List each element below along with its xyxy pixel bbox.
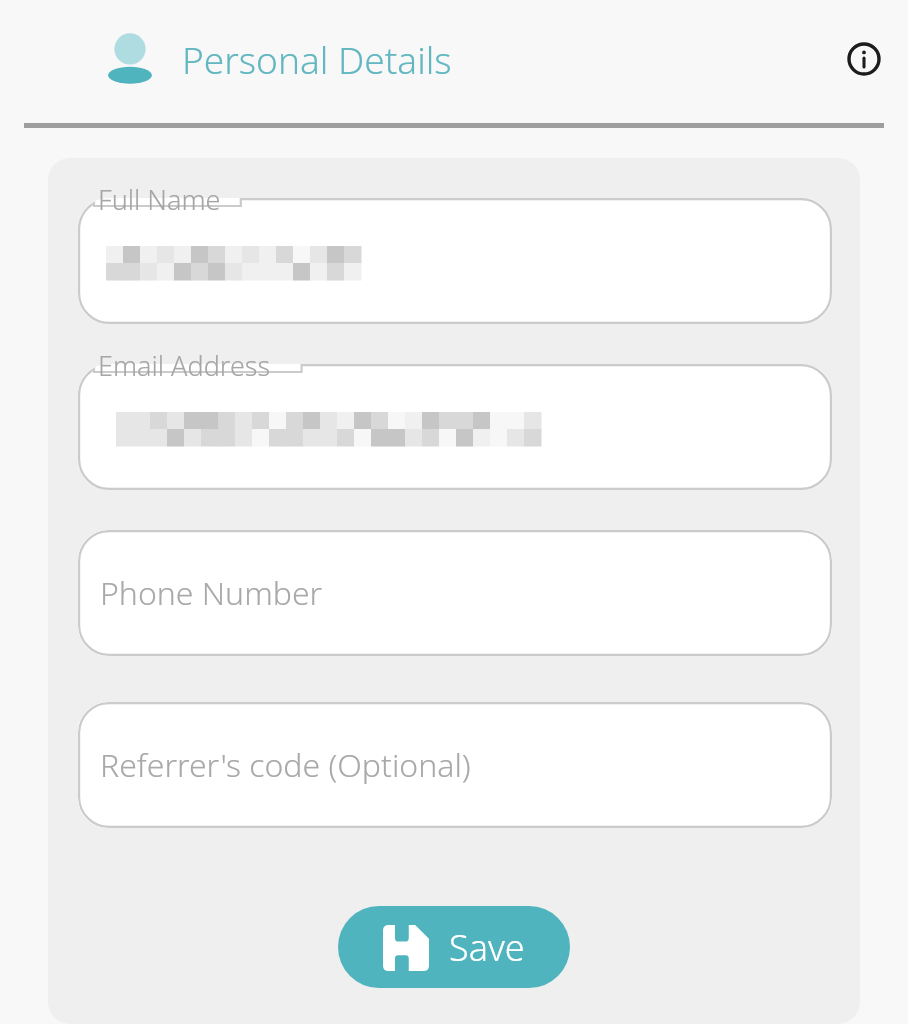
staticText: Save <box>449 923 525 972</box>
button[interactable]: Email Address <box>78 364 832 490</box>
staticText: Referrer's code (Optional) <box>100 743 471 787</box>
button[interactable]: Info <box>832 27 896 91</box>
other: Profile <box>104 31 156 87</box>
staticText: Personal Details <box>182 34 452 84</box>
button[interactable]: Phone Number <box>78 530 832 656</box>
staticText: Email Address <box>98 347 271 384</box>
button[interactable]: Full Name <box>78 198 832 324</box>
button[interactable]: Save <box>338 906 570 988</box>
staticText: Full Name <box>98 181 221 218</box>
button[interactable]: Referrer's code (Optional) <box>78 702 832 828</box>
staticText: Phone Number <box>100 571 323 615</box>
